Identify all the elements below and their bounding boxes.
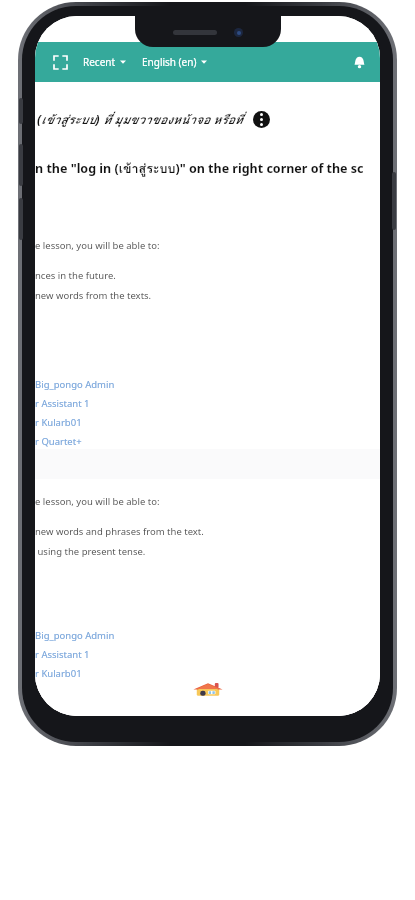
button[interactable]: r Kularb01: [35, 666, 82, 681]
button[interactable]: More options: [253, 111, 270, 128]
staticText: e lesson, you will be able to:: [35, 495, 160, 508]
staticText: n the "log in (เข้าสู่ระบบ)" on the righ…: [35, 159, 364, 179]
staticText: r Quartet+: [35, 435, 82, 448]
button[interactable]: r Assistant 1: [35, 647, 90, 662]
staticText: Big_pongo Admin: [35, 378, 115, 391]
staticText: new words and phrases from the text.: [35, 525, 204, 538]
button[interactable]: Notifications: [344, 47, 374, 77]
staticText: nces in the future.: [35, 269, 116, 282]
button[interactable]: Toggle fullscreen: [47, 49, 73, 75]
staticText: English (en): [142, 55, 197, 69]
staticText: Big_pongo Admin: [35, 629, 115, 642]
button[interactable]: Big_pongo Admin: [35, 377, 115, 392]
staticText: (เข้าสู่ระบบ) ที่ มุมขวาของหน้าจอ หรือที…: [37, 110, 243, 129]
staticText: r Assistant 1: [35, 648, 90, 661]
staticText: Recent: [83, 55, 116, 69]
button[interactable]: r Assistant 1: [35, 396, 90, 411]
staticText: r Kularb01: [35, 667, 82, 680]
button[interactable]: English (en): [140, 51, 209, 73]
button[interactable]: Home: [187, 681, 229, 698]
button[interactable]: r Kularb01: [35, 415, 82, 430]
staticText: r Assistant 1: [35, 397, 90, 410]
staticText: e lesson, you will be able to:: [35, 239, 160, 252]
button[interactable]: r Quartet+: [35, 434, 82, 449]
staticText: using the present tense.: [35, 545, 146, 558]
button[interactable]: Recent: [81, 51, 128, 73]
button[interactable]: Big_pongo Admin: [35, 628, 115, 643]
staticText: r Kularb01: [35, 416, 82, 429]
staticText: new words from the texts.: [35, 289, 152, 302]
